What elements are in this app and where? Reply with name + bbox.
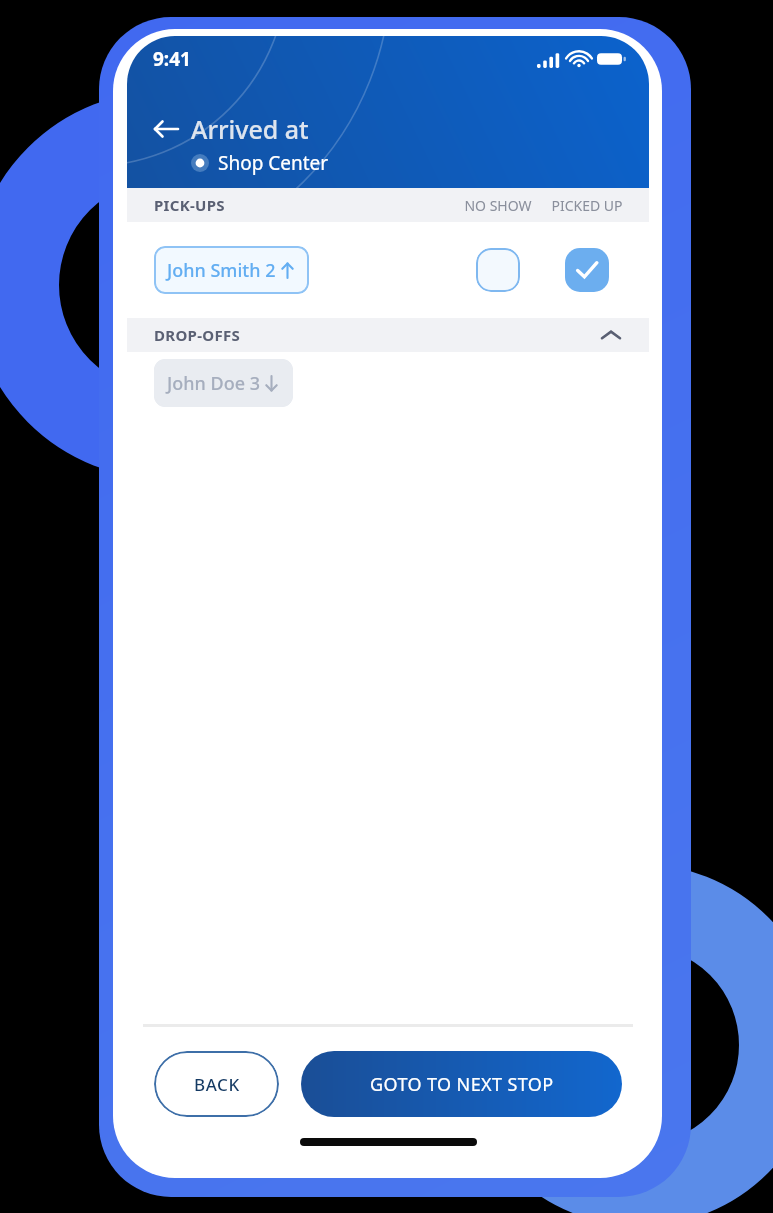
button[interactable]: BACK [154,1051,279,1117]
button[interactable]: GOTO TO NEXT STOP [301,1051,622,1117]
staticText: DROP-OFFS [154,325,241,345]
staticText: PICKED UP [541,196,633,215]
button[interactable]: PICK-UPS [127,188,649,222]
staticText: Shop Center [218,150,329,176]
button[interactable]: No show [476,248,520,292]
staticText: 9:41 [153,46,191,72]
button[interactable]: Picked up [565,248,609,292]
staticText: John Doe 3 [167,371,260,396]
staticText: GOTO TO NEXT STOP [370,1072,554,1097]
staticText: PICK-UPS [154,195,225,215]
button[interactable]: John Smith 2 [154,246,309,294]
staticText: John Smith 2 [167,258,276,283]
button[interactable]: John Doe 3 [154,359,293,407]
staticText: Arrived at [191,112,309,146]
staticText: BACK [194,1073,240,1096]
button[interactable]: DROP-OFFS [127,318,649,352]
staticText: NO SHOW [455,196,541,215]
button[interactable]: Back [153,112,309,146]
